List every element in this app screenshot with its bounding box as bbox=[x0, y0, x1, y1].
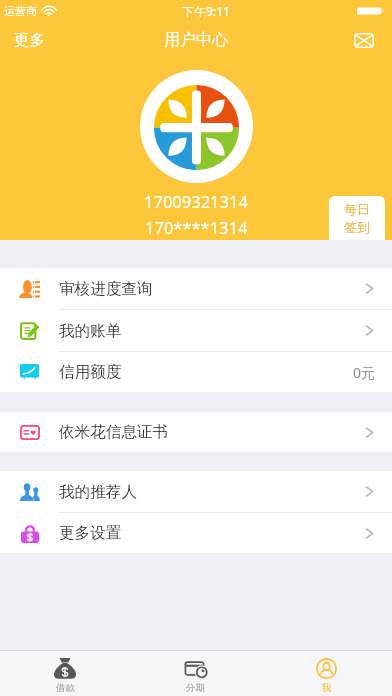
staticText: 借款 bbox=[56, 682, 75, 694]
staticText: 0元 bbox=[353, 363, 376, 382]
button[interactable]: 更多设置 bbox=[0, 513, 392, 553]
staticText: 分期 bbox=[186, 682, 205, 694]
staticText: 信用额度 bbox=[59, 362, 122, 382]
button[interactable]: 分期 bbox=[130, 651, 261, 696]
button[interactable]: Messages bbox=[346, 25, 382, 56]
staticText: 下午9:11 bbox=[182, 3, 230, 19]
staticText: 运营商 bbox=[4, 4, 37, 18]
staticText: 更多设置 bbox=[59, 523, 122, 543]
button[interactable]: 借款 bbox=[0, 651, 130, 696]
button[interactable]: 更多 bbox=[8, 22, 51, 58]
staticText: 我的推荐人 bbox=[59, 482, 137, 502]
button[interactable]: 依米花信息证书 bbox=[0, 412, 392, 452]
button[interactable]: 每日 bbox=[329, 196, 385, 240]
button[interactable]: 我 bbox=[261, 651, 392, 696]
staticText: 我 bbox=[322, 682, 332, 694]
staticText: 我的账单 bbox=[59, 321, 122, 341]
button[interactable]: 我的账单 bbox=[0, 310, 392, 352]
staticText: 17009321314 bbox=[144, 190, 248, 212]
staticText: 170****1314 bbox=[145, 216, 248, 238]
button[interactable]: 审核进度查询 bbox=[0, 268, 392, 310]
staticText: 用户中心 bbox=[164, 30, 228, 50]
staticText: 更多 bbox=[14, 30, 45, 50]
staticText: 签到 bbox=[344, 219, 370, 235]
button[interactable]: 信用额度 bbox=[0, 352, 392, 392]
button[interactable]: 我的推荐人 bbox=[0, 471, 392, 513]
staticText: 审核进度查询 bbox=[59, 279, 153, 299]
staticText: 每日 bbox=[344, 201, 370, 217]
staticText: 依米花信息证书 bbox=[59, 422, 169, 442]
